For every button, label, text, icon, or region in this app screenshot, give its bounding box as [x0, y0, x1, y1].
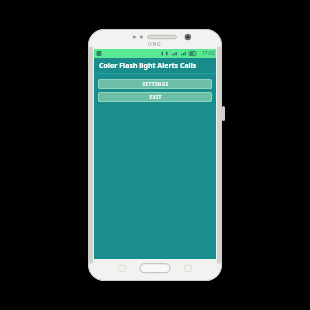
button[interactable]: EXIT — [98, 92, 212, 102]
staticText: SETTINGS — [142, 81, 169, 88]
button[interactable]: SETTINGS — [98, 79, 212, 89]
staticText: Color Flash light Alerts Calls — [99, 61, 197, 71]
staticText: UNG — [148, 41, 162, 48]
staticText: 17:02 — [202, 50, 215, 57]
other: Power — [222, 106, 225, 121]
staticText: EXIT — [149, 94, 162, 101]
